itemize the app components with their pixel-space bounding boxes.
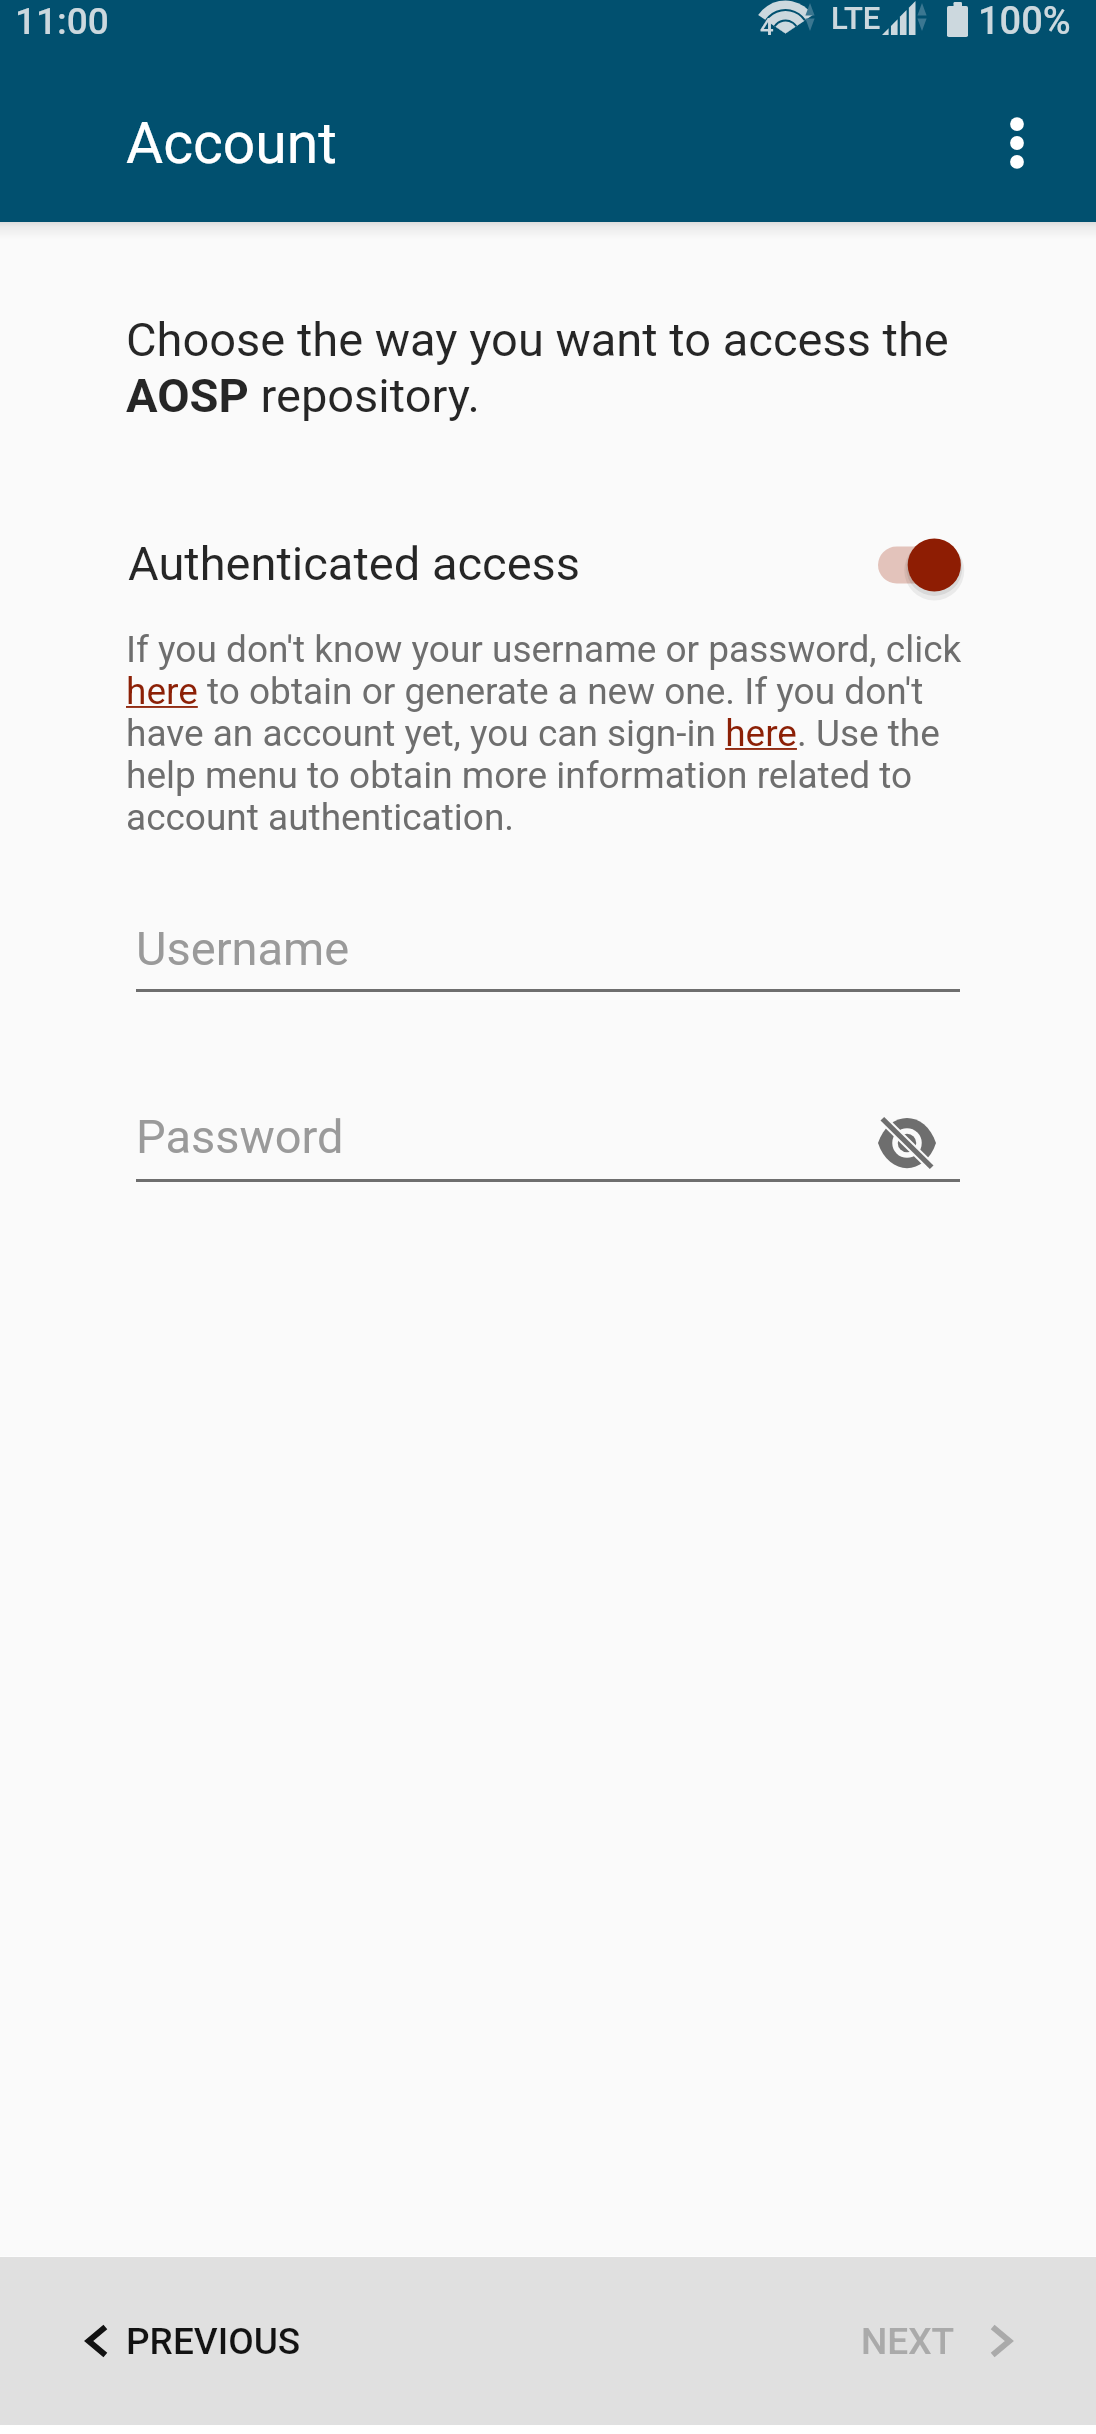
button[interactable]: More options (961, 87, 1073, 199)
staticText: If you don't know your username or passw… (126, 628, 968, 839)
staticText: LTE (831, 0, 881, 36)
button[interactable]: NEXT (838, 2281, 1040, 2401)
button[interactable]: Password (136, 1066, 960, 1182)
staticText: Password (136, 1109, 344, 1164)
staticText: Account (126, 110, 337, 177)
staticText: NEXT (861, 2320, 955, 2363)
button[interactable]: Show password (861, 1097, 953, 1189)
button[interactable]: Authenticated access (126, 513, 974, 615)
button[interactable]: Username (136, 878, 960, 992)
staticText: Authenticated access (128, 536, 581, 591)
staticText: Username (136, 921, 350, 976)
staticText: 100% (978, 0, 1071, 44)
button[interactable]: Authenticated access, on (878, 517, 974, 613)
staticText: 4 (760, 13, 774, 41)
staticText: 11:00 (15, 0, 109, 43)
staticText: PREVIOUS (126, 2320, 301, 2363)
button[interactable]: PREVIOUS (56, 2281, 326, 2401)
staticText: Choose the way you want to access the AO… (126, 312, 962, 424)
